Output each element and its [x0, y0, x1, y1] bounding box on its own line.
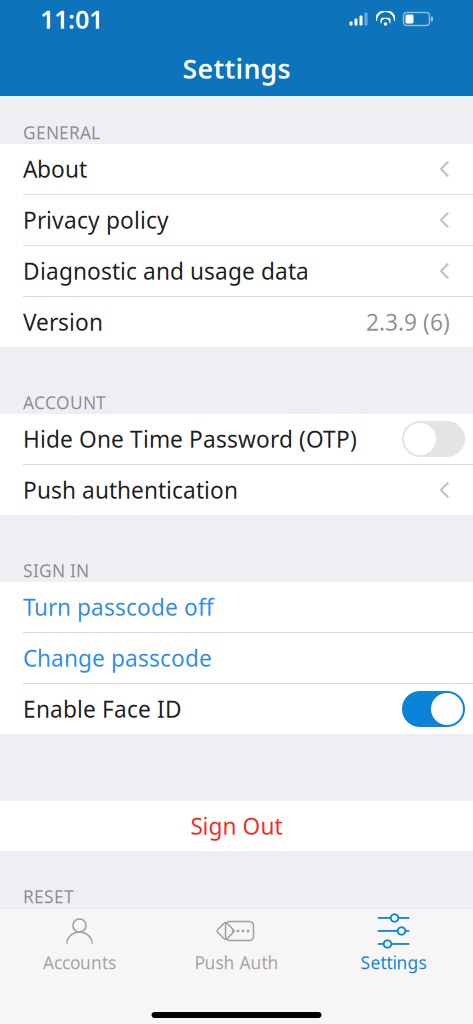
button[interactable]: Turn passcode off: [0, 582, 473, 632]
staticText: RESET: [23, 885, 74, 908]
button[interactable]: Push authentication: [0, 465, 473, 515]
staticText: Change passcode: [23, 643, 212, 673]
staticText: Version: [23, 307, 103, 337]
button[interactable]: About: [0, 144, 473, 194]
staticText: Push Auth: [194, 951, 278, 974]
staticText: 2.3.9 (6): [366, 307, 450, 337]
staticText: Diagnostic and usage data: [23, 256, 309, 286]
button[interactable]: Diagnostic and usage data: [0, 246, 473, 296]
button[interactable]: Settings: [315, 908, 472, 982]
button[interactable]: Accounts: [1, 908, 158, 982]
button[interactable]: Change passcode: [0, 633, 473, 683]
staticText: 11:01: [40, 2, 103, 36]
staticText: Turn passcode off: [23, 592, 214, 622]
staticText: Hide One Time Password (OTP): [23, 424, 357, 454]
staticText: About: [23, 154, 87, 184]
staticText: Sign Out: [190, 811, 282, 841]
staticText: Settings: [182, 51, 290, 86]
staticText: Privacy policy: [23, 205, 169, 235]
staticText: SIGN IN: [23, 559, 89, 582]
button[interactable]: Sign Out: [0, 801, 473, 851]
staticText: GENERAL: [23, 121, 100, 144]
staticText: ACCOUNT: [23, 391, 106, 414]
staticText: Enable Face ID: [23, 694, 182, 724]
staticText: Push authentication: [23, 475, 238, 505]
button[interactable]: Privacy policy: [0, 195, 473, 245]
button[interactable]: Hide One Time Password (OTP): [402, 421, 465, 457]
staticText: Accounts: [43, 951, 116, 974]
button[interactable]: Enable Face ID: [402, 691, 465, 727]
staticText: Settings: [360, 951, 426, 974]
button[interactable]: Push Auth: [158, 908, 315, 982]
